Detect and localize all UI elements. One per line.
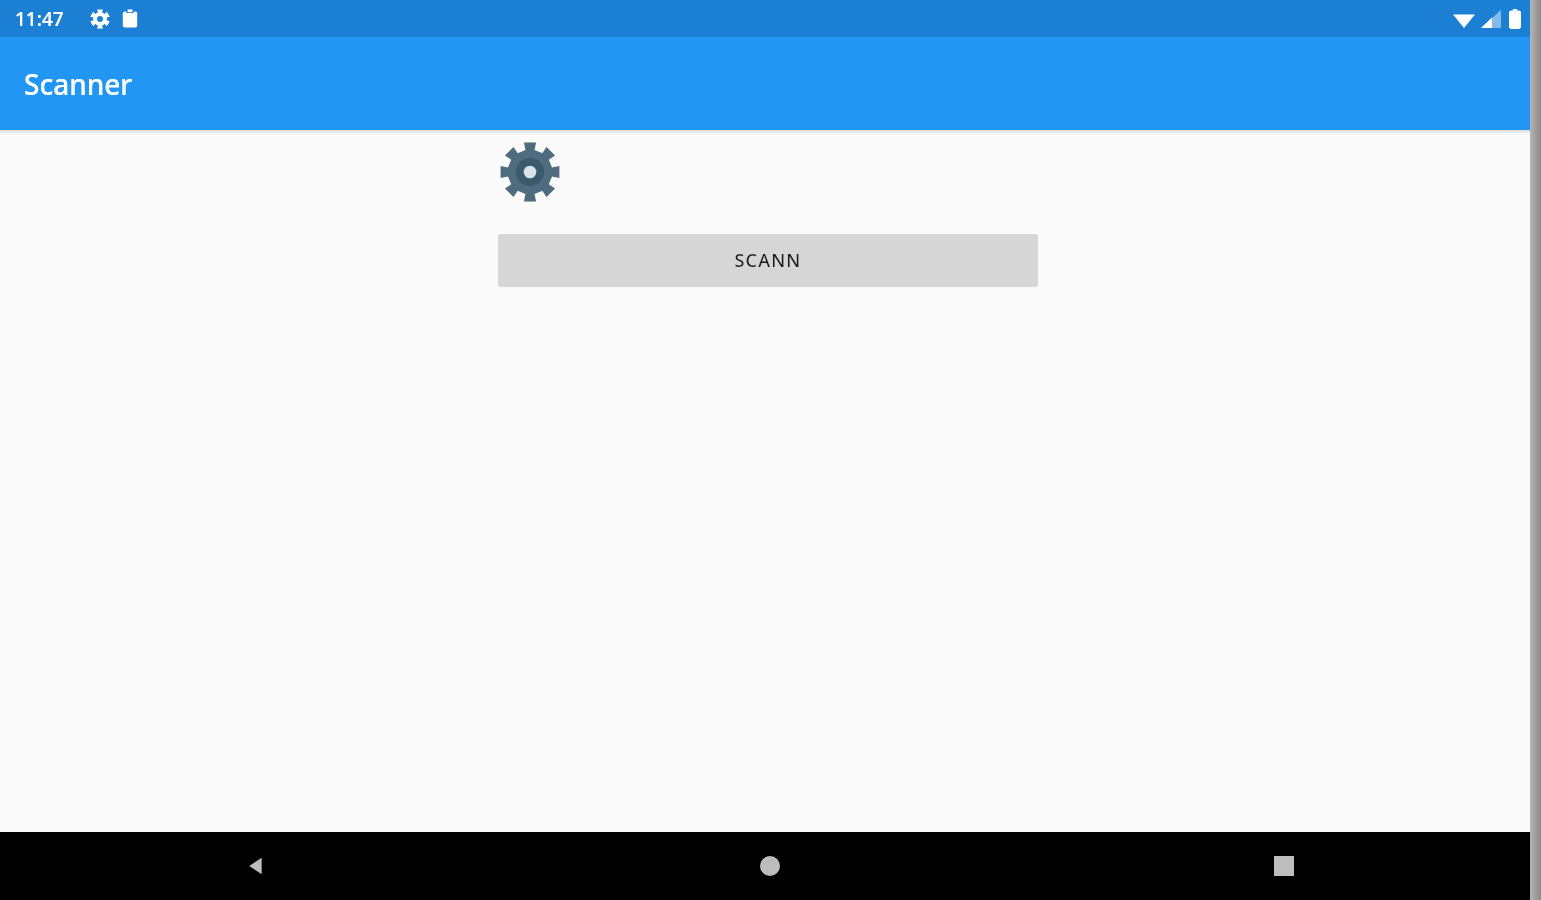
staticText: SCANN [734,248,802,273]
button[interactable]: Back [0,832,513,900]
staticText: Scanner [24,65,133,103]
button[interactable]: Recent apps [1027,832,1541,900]
staticText: 11:47 [15,6,64,32]
button[interactable]: Home [513,832,1027,900]
button[interactable]: Settings [497,142,563,202]
button[interactable]: SCANN [498,234,1038,287]
